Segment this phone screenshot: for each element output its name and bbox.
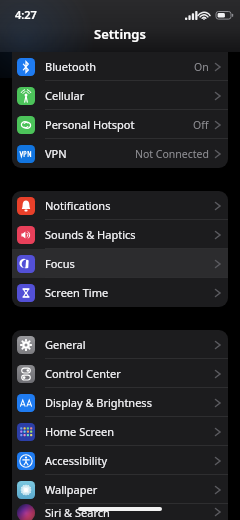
staticText: Off [193, 118, 209, 132]
button[interactable]: General [12, 330, 228, 359]
staticText: Sounds & Haptics [45, 227, 136, 242]
staticText: Screen Time [45, 285, 109, 300]
staticText: Focus [45, 256, 75, 271]
staticText: Home Screen [45, 424, 115, 439]
button[interactable]: Notifications [12, 191, 228, 220]
staticText: VPN [45, 146, 67, 161]
staticText: Cellular [45, 88, 85, 103]
staticText: On [194, 60, 209, 74]
button[interactable]: Focus [12, 249, 228, 278]
button[interactable]: Home Screen [12, 417, 228, 446]
staticText: Notifications [45, 198, 111, 213]
staticText: 4:27 [15, 7, 37, 22]
button[interactable]: VPN [12, 139, 228, 168]
staticText: Settings [94, 25, 146, 43]
button[interactable]: Cellular [12, 81, 228, 110]
button[interactable]: Accessibility [12, 446, 228, 475]
button[interactable]: Bluetooth [12, 52, 228, 81]
button[interactable]: Screen Time [12, 278, 228, 307]
staticText: Bluetooth [45, 59, 97, 74]
staticText: Control Center [45, 366, 121, 381]
staticText: Personal Hotspot [45, 117, 135, 132]
staticText: Accessibility [45, 453, 108, 468]
staticText: Display & Brightness [45, 395, 152, 410]
button[interactable]: Control Center [12, 359, 228, 388]
button[interactable]: Display & Brightness [12, 388, 228, 417]
button[interactable]: Wallpaper [12, 475, 228, 504]
button[interactable]: Sounds & Haptics [12, 220, 228, 249]
button[interactable]: Personal Hotspot [12, 110, 228, 139]
staticText: Wallpaper [45, 482, 98, 497]
staticText: Siri & Search [45, 505, 110, 520]
staticText: Not Connected [135, 147, 209, 161]
button[interactable]: Siri & Search [12, 504, 228, 520]
staticText: General [45, 337, 86, 352]
